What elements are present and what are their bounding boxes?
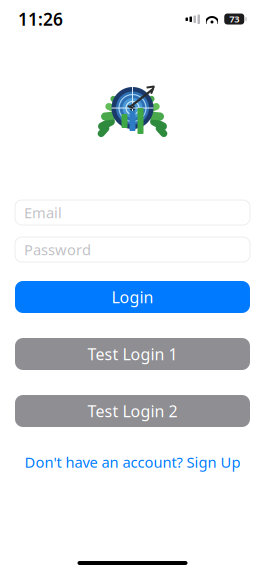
button[interactable]: Test Login 2	[15, 395, 250, 427]
staticText: 73	[229, 13, 239, 25]
button[interactable]: Login	[15, 281, 250, 313]
staticText: Login	[111, 286, 153, 308]
staticText: Email	[24, 203, 62, 222]
staticText: Test Login 2	[87, 400, 177, 422]
button[interactable]: Don't have an account? Sign Up	[15, 452, 250, 472]
staticText: Don't have an account? Sign Up	[24, 452, 240, 472]
button[interactable]: Test Login 1	[15, 338, 250, 370]
staticText: 11:26	[18, 7, 63, 30]
staticText: Test Login 1	[87, 343, 177, 365]
staticText: Password	[24, 240, 91, 259]
